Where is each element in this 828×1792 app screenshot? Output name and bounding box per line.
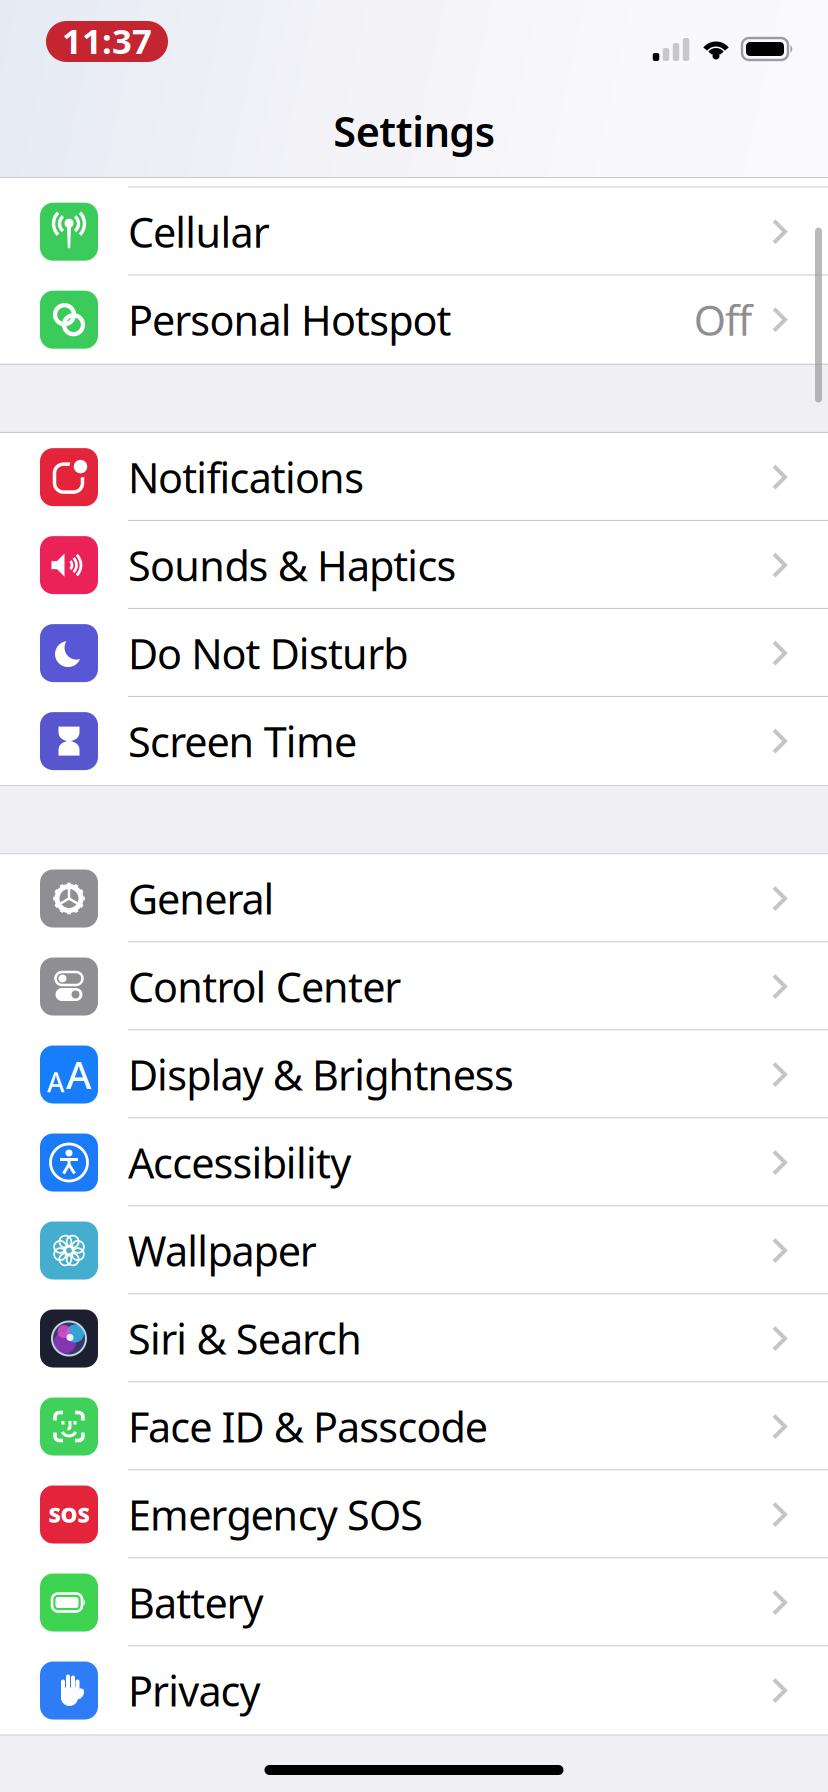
staticText: 11:37	[62, 17, 152, 63]
button[interactable]: SOS	[0, 1470, 828, 1558]
staticText: Sounds & Haptics	[128, 538, 456, 593]
staticText: Display & Brightness	[128, 1047, 514, 1102]
staticText: Wallpaper	[128, 1223, 317, 1278]
button[interactable]: Siri & Search	[0, 1294, 828, 1382]
button[interactable]: Control Center	[0, 942, 828, 1030]
staticText: Face ID & Passcode	[128, 1399, 488, 1454]
staticText: General	[128, 871, 275, 926]
button[interactable]: Face ID & Passcode	[0, 1382, 828, 1470]
staticText: Screen Time	[128, 714, 357, 769]
button[interactable]: General	[0, 854, 828, 942]
staticText: SOS	[48, 1500, 89, 1529]
staticText: Control Center	[128, 959, 401, 1014]
button[interactable]: Screen Time	[0, 697, 828, 785]
staticText: Personal Hotspot	[128, 292, 451, 347]
staticText: Cellular	[128, 204, 270, 259]
staticText: Off	[694, 292, 752, 347]
staticText: Emergency SOS	[128, 1487, 423, 1542]
staticText: Accessibility	[128, 1135, 351, 1190]
button[interactable]: Privacy	[0, 1646, 828, 1734]
staticText: Notifications	[128, 450, 364, 505]
staticText: Battery	[128, 1575, 264, 1630]
button[interactable]: Notifications	[0, 433, 828, 521]
button[interactable]: Cellular	[0, 188, 828, 276]
staticText: Settings	[333, 104, 495, 158]
staticText: Privacy	[128, 1663, 261, 1718]
staticText: A	[47, 1064, 64, 1100]
button[interactable]: Accessibility	[0, 1118, 828, 1206]
button[interactable]: Return to call	[46, 21, 168, 62]
button[interactable]: Battery	[0, 1558, 828, 1646]
button[interactable]: Wallpaper	[0, 1206, 828, 1294]
staticText: Siri & Search	[128, 1311, 362, 1366]
button[interactable]: Do Not Disturb	[0, 609, 828, 697]
button[interactable]: Sounds & Haptics	[0, 521, 828, 609]
staticText: Do Not Disturb	[128, 626, 408, 681]
staticText: A	[66, 1048, 91, 1100]
button[interactable]: A	[0, 1030, 828, 1118]
button[interactable]: Personal Hotspot	[0, 276, 828, 364]
